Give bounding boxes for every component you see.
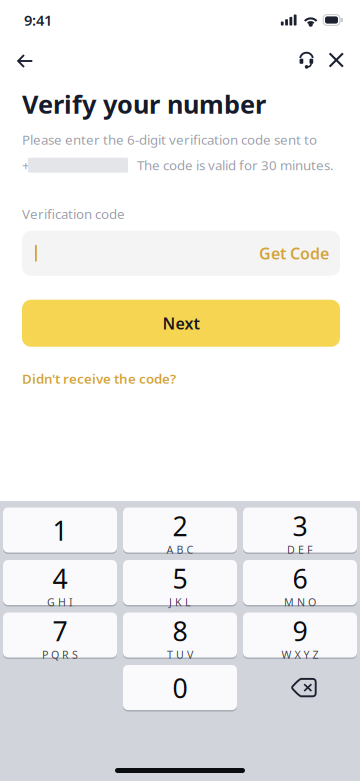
staticText: Didn't receive the code? [22,370,176,387]
button[interactable]: Next [22,300,340,347]
staticText: 7 [52,613,67,649]
staticText: J K L [169,595,191,609]
staticText: 0 [172,670,187,706]
staticText: Get Code [259,243,329,264]
staticText: D E F [287,543,313,557]
button[interactable]: Close [314,40,344,80]
staticText: Verify your number [22,87,266,121]
button[interactable]: Delete [243,665,357,710]
button[interactable]: 3 [243,508,357,553]
button[interactable]: 9 [243,613,357,658]
staticText: T U V [167,648,193,662]
staticText: A B C [166,543,193,557]
button[interactable]: 4 [3,560,117,605]
staticText: The code is valid for 30 minutes. [137,156,334,174]
staticText: Next [162,313,199,334]
staticText: W X Y Z [281,648,318,662]
button[interactable]: 1 [3,508,117,553]
staticText: M N O [284,595,316,609]
staticText: 1 [52,513,67,548]
staticText: 3 [292,508,307,544]
button[interactable]: 7 [3,613,117,658]
staticText: + [22,156,30,174]
button[interactable]: Get Code [259,243,329,264]
button[interactable]: Didn't receive the code? [22,370,176,387]
button[interactable]: 5 [123,560,237,605]
staticText: 6 [292,561,307,596]
staticText: Verification code [22,205,125,223]
staticText: 5 [172,561,187,596]
staticText: 2 [172,508,187,544]
staticText: Please enter the 6-digit verification co… [22,131,317,148]
button[interactable]: Customer support [282,40,314,80]
staticText: 9:41 [24,10,52,30]
staticText: G H I [47,595,73,609]
button[interactable]: 8 [123,613,237,658]
staticText: 9 [292,613,307,649]
button[interactable]: Back [17,40,55,80]
staticText: 4 [52,561,67,596]
staticText: 8 [172,613,187,649]
staticText: P Q R S [42,648,78,662]
button[interactable]: 0 [123,665,237,710]
button[interactable]: 2 [123,508,237,553]
button[interactable]: 6 [243,560,357,605]
